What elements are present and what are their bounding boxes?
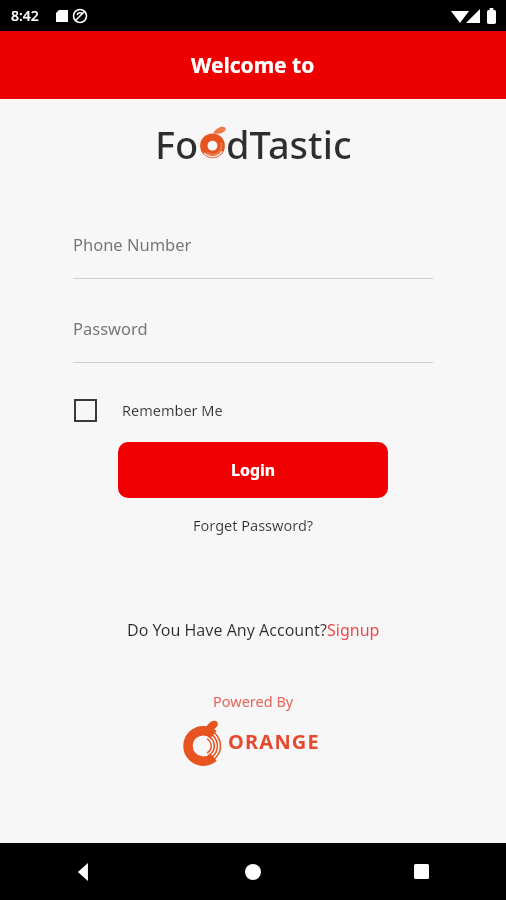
- button[interactable]: Orange logo: [187, 722, 320, 760]
- staticText: Powered By: [213, 691, 294, 711]
- button[interactable]: Password: [73, 309, 433, 363]
- button[interactable]: Back: [0, 843, 168, 900]
- button[interactable]: Phone Number: [73, 225, 433, 279]
- button[interactable]: Remember Me: [74, 394, 506, 426]
- button[interactable]: Forget Password?: [185, 512, 322, 538]
- staticText: Forget Password?: [193, 515, 314, 535]
- button[interactable]: Home: [168, 843, 337, 900]
- staticText: Fo: [155, 118, 199, 164]
- staticText: 8:42: [11, 6, 39, 25]
- staticText: Login: [231, 459, 276, 481]
- button[interactable]: Recent apps: [337, 843, 506, 900]
- staticText: Remember Me: [122, 400, 223, 420]
- staticText: dTastic: [226, 118, 352, 164]
- staticText: Do You Have Any Account?: [127, 619, 327, 641]
- staticText: ORANGE: [228, 728, 320, 755]
- button[interactable]: Login: [118, 442, 388, 498]
- button[interactable]: Signup: [327, 619, 380, 641]
- staticText: Phone Number: [73, 233, 192, 255]
- staticText: Signup: [327, 619, 380, 641]
- staticText: Password: [73, 317, 148, 339]
- other: Orange logo: [187, 722, 221, 760]
- staticText: Welcome to: [191, 51, 315, 80]
